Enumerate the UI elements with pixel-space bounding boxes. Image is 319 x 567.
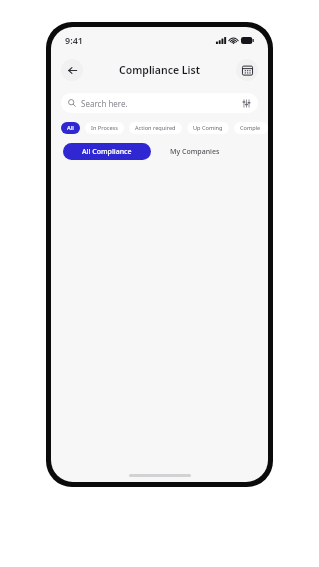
staticText: All Compliance [82, 147, 132, 157]
staticText: 9:41 [65, 34, 83, 46]
button[interactable]: Search here. [61, 93, 258, 113]
staticText: Completed [240, 124, 262, 132]
button[interactable]: Action required [129, 122, 182, 134]
staticText: Action required [135, 124, 176, 132]
button[interactable]: In Process [85, 122, 124, 134]
staticText: Compliance List [119, 63, 200, 77]
button[interactable]: Calendar [236, 59, 258, 81]
button[interactable]: Up Coming [187, 122, 229, 134]
button[interactable]: My Companies [151, 143, 239, 160]
button[interactable]: All Compliance [63, 143, 151, 160]
button[interactable]: Completed [234, 122, 268, 134]
staticText: Search here. [81, 98, 128, 109]
button[interactable]: Back [61, 59, 83, 81]
staticText: Up Coming [193, 124, 223, 132]
staticText: All [67, 124, 74, 132]
staticText: In Process [91, 124, 118, 132]
staticText: My Companies [170, 147, 220, 157]
button[interactable]: All [61, 122, 80, 134]
button[interactable]: Filter [241, 98, 251, 108]
